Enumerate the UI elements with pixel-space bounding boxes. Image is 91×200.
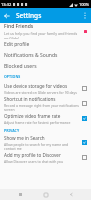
button[interactable]: Back	[0, 9, 13, 22]
staticText: PRIVACY	[4, 128, 20, 133]
staticText: Blocked users	[4, 63, 37, 70]
button[interactable]: Shortcut in notifications	[0, 96, 91, 111]
staticText: Notifications & Sounds	[4, 52, 58, 59]
staticText: Show me in Search	[4, 135, 45, 141]
button[interactable]: Optimize video frame rate	[0, 111, 91, 126]
button[interactable]: Add my profile to Discover	[0, 150, 91, 165]
button[interactable]: Show me in Search	[0, 135, 91, 150]
staticText: Optimize video frame rate	[4, 113, 61, 119]
staticText: Let us help you find your family and fri…	[4, 31, 82, 39]
staticText: Add my profile to Discover	[4, 152, 61, 158]
button[interactable]: Blocked users	[0, 61, 91, 72]
button[interactable]: Notifications & Sounds	[0, 50, 91, 61]
staticText: 100%	[79, 2, 90, 7]
staticText: Find Friends	[4, 23, 34, 30]
button[interactable]: Find Friends	[0, 23, 91, 39]
button[interactable]: Edit profile	[0, 39, 91, 50]
button[interactable]: More options	[78, 9, 91, 22]
staticText: Adjust frame rate for fastest performanc…	[4, 120, 71, 125]
staticText: Shortcut in notifications	[4, 96, 56, 102]
staticText: Use device storage for videos	[4, 83, 68, 89]
staticText: OPTIONS	[4, 74, 21, 79]
staticText: Edit profile	[4, 41, 30, 48]
staticText: Record a message right from your notific…	[4, 103, 80, 111]
button[interactable]: Home	[40, 189, 51, 200]
staticText: Settings	[16, 11, 42, 20]
staticText: Allow people to search for my name and c…	[4, 142, 80, 150]
staticText: Videos are stored on Glide servers for 9…	[4, 90, 77, 95]
staticText: 13:32	[1, 2, 12, 7]
button[interactable]: Use device storage for videos	[0, 81, 91, 96]
button[interactable]: Back	[66, 189, 77, 200]
staticText: Allow Discover users to chat with you	[4, 159, 63, 164]
button[interactable]: Recent apps	[15, 189, 26, 200]
